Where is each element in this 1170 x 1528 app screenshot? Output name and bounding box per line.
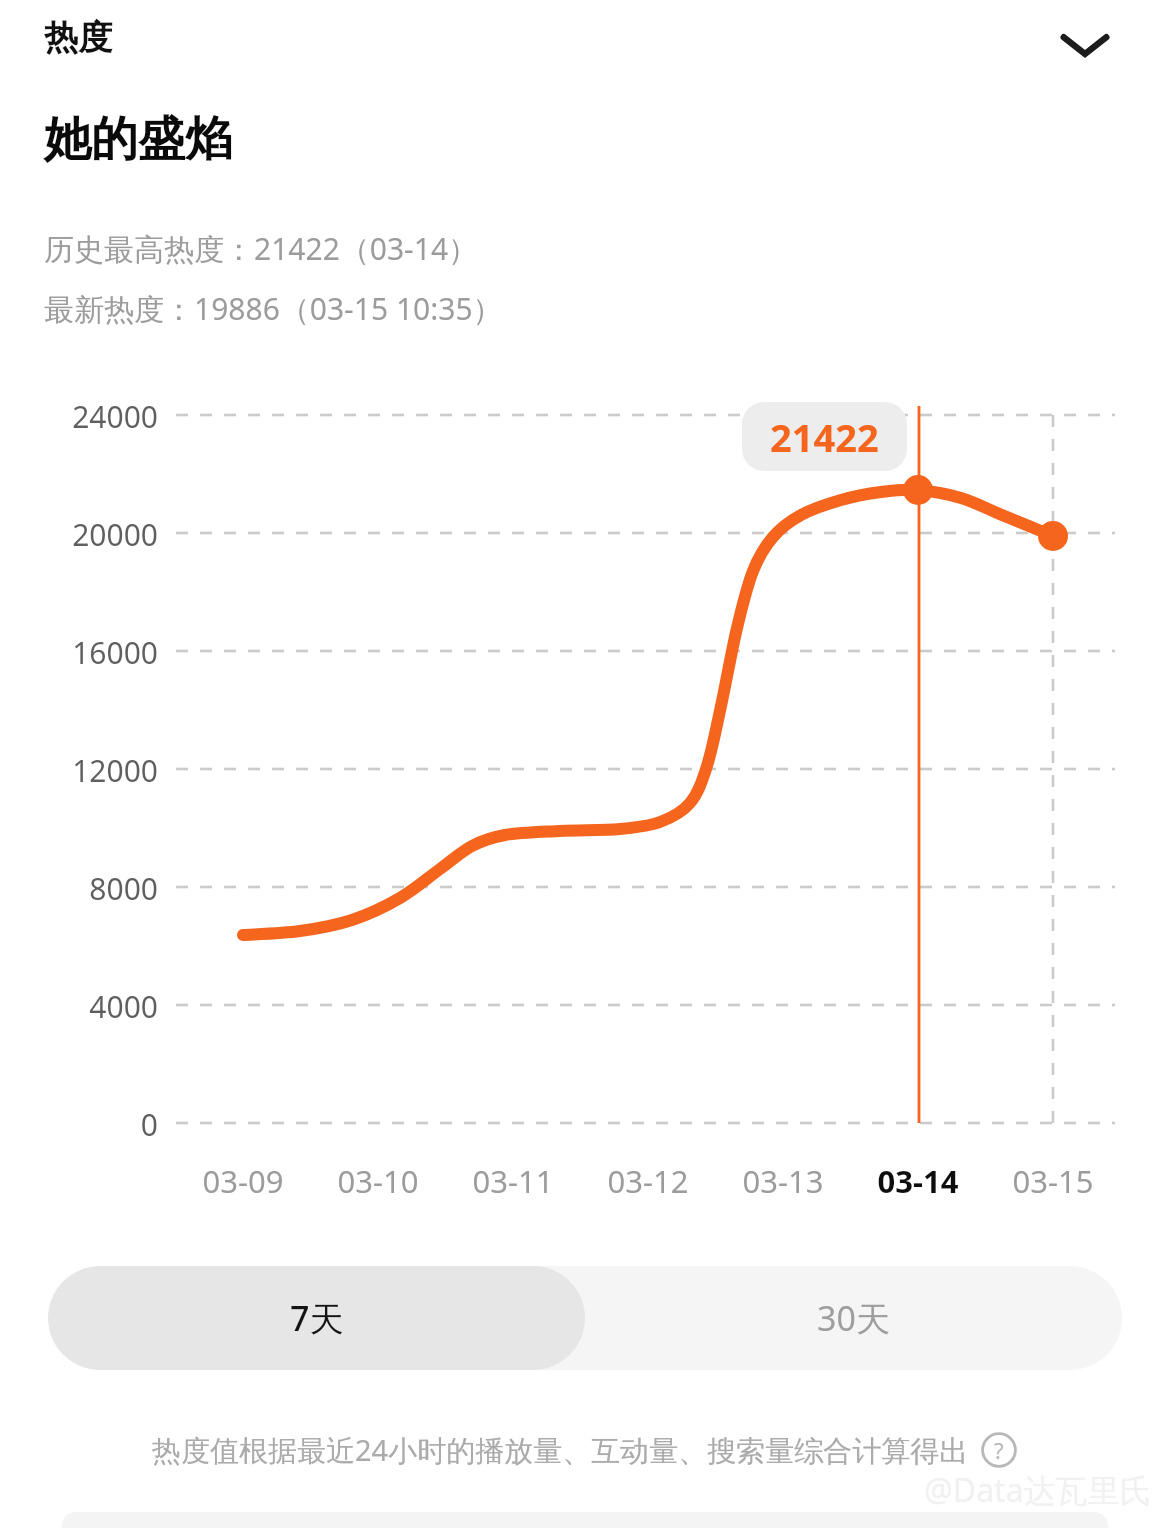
staticText: 16000 <box>0 632 158 673</box>
staticText: 03-14 <box>848 1160 988 1202</box>
button[interactable]: 30天 <box>585 1266 1122 1370</box>
staticText: 03-11 <box>443 1160 583 1202</box>
staticText: @Data达瓦里氏 <box>924 1468 1152 1512</box>
button[interactable]: Collapse <box>1040 0 1130 90</box>
staticText: 0 <box>0 1104 158 1145</box>
staticText: 20000 <box>0 514 158 555</box>
staticText: 30天 <box>817 1295 890 1341</box>
staticText: 03-13 <box>713 1160 853 1202</box>
staticText: 热度 <box>44 16 112 59</box>
staticText: 历史最高热度：21422（03-14） <box>44 228 479 269</box>
staticText: 4000 <box>0 986 158 1027</box>
staticText: 12000 <box>0 750 158 791</box>
staticText: 03-09 <box>173 1160 313 1202</box>
button[interactable]: 7天 <box>48 1266 585 1370</box>
button[interactable]: Help <box>979 1430 1019 1470</box>
staticText: 03-15 <box>983 1160 1123 1202</box>
staticText: 8000 <box>0 868 158 909</box>
staticText: 最新热度：19886（03-15 10:35） <box>44 288 503 329</box>
staticText: ? <box>994 1435 1004 1465</box>
staticText: 03-10 <box>308 1160 448 1202</box>
staticText: 03-12 <box>578 1160 718 1202</box>
staticText: 24000 <box>0 396 158 437</box>
staticText: 热度值根据最近24小时的播放量、互动量、搜索量综合计算得出 <box>152 1430 969 1470</box>
staticText: 21422 <box>770 411 879 463</box>
staticText: 她的盛焰 <box>44 110 232 169</box>
staticText: 7天 <box>290 1295 344 1341</box>
